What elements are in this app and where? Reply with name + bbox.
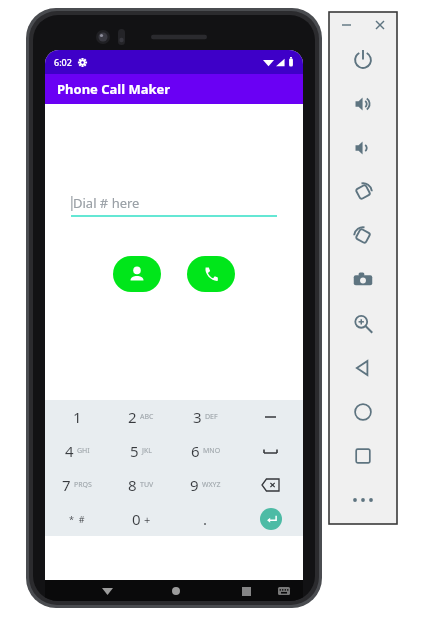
button[interactable]: Rotate left: [329, 170, 397, 214]
staticText: 1: [73, 407, 82, 427]
staticText: Phone Call Maker: [57, 80, 171, 98]
button[interactable]: 0: [109, 502, 173, 536]
button[interactable]: 1: [45, 400, 109, 434]
button[interactable]: 3: [173, 400, 238, 434]
button[interactable]: Back: [329, 346, 397, 390]
button[interactable]: 6: [173, 434, 238, 468]
button[interactable]: Minimize: [337, 16, 355, 34]
button[interactable]: Recents: [236, 581, 256, 601]
button[interactable]: Back: [97, 581, 117, 601]
button[interactable]: Call: [187, 256, 235, 292]
button[interactable]: Enter: [238, 502, 303, 536]
staticText: 8: [128, 475, 137, 495]
staticText: 7: [62, 475, 71, 495]
staticText: Dial # here: [73, 194, 140, 212]
staticText: 0: [132, 509, 141, 529]
button[interactable]: Home: [329, 390, 397, 434]
button[interactable]: 2: [109, 400, 173, 434]
button[interactable]: Overview: [329, 434, 397, 478]
button[interactable]: Rotate right: [329, 214, 397, 258]
button[interactable]: 8: [109, 468, 173, 502]
button[interactable]: Space: [238, 434, 303, 468]
staticText: +: [144, 512, 151, 527]
staticText: GHI: [77, 446, 90, 456]
button[interactable]: Home: [166, 581, 186, 601]
button[interactable]: Close: [371, 16, 389, 34]
button[interactable]: More options: [329, 478, 397, 522]
button[interactable]: Power: [329, 38, 397, 82]
button[interactable]: 4: [45, 434, 109, 468]
button[interactable]: Phone Call Maker: [45, 74, 303, 104]
button[interactable]: Zoom: [329, 302, 397, 346]
staticText: MNO: [203, 446, 221, 456]
staticText: 9: [190, 475, 199, 495]
staticText: 6: [191, 441, 200, 461]
staticText: 2: [128, 407, 137, 427]
staticText: TUV: [140, 480, 154, 490]
staticText: ABC: [140, 412, 154, 422]
button[interactable]: Volume up: [329, 82, 397, 126]
staticText: DEF: [205, 412, 218, 422]
button[interactable]: * #: [45, 502, 109, 536]
staticText: .: [203, 509, 208, 529]
button[interactable]: 7: [45, 468, 109, 502]
button[interactable]: Pick contact: [113, 256, 161, 292]
button[interactable]: Volume down: [329, 126, 397, 170]
staticText: JKL: [142, 446, 152, 456]
staticText: WXYZ: [202, 480, 221, 490]
button[interactable]: Dial # here: [71, 194, 277, 217]
button[interactable]: 9: [173, 468, 238, 502]
button[interactable]: Keyboard: [274, 581, 294, 601]
button[interactable]: 5: [109, 434, 173, 468]
staticText: 4: [65, 441, 74, 461]
staticText: 3: [193, 407, 202, 427]
staticText: 6:02: [54, 56, 72, 68]
staticText: * #: [69, 513, 85, 525]
button[interactable]: .: [173, 502, 238, 536]
staticText: PRQS: [74, 480, 92, 490]
button[interactable]: Dash: [238, 400, 303, 434]
button[interactable]: Screenshot: [329, 258, 397, 302]
staticText: 5: [130, 441, 139, 461]
button[interactable]: Backspace: [238, 468, 303, 502]
